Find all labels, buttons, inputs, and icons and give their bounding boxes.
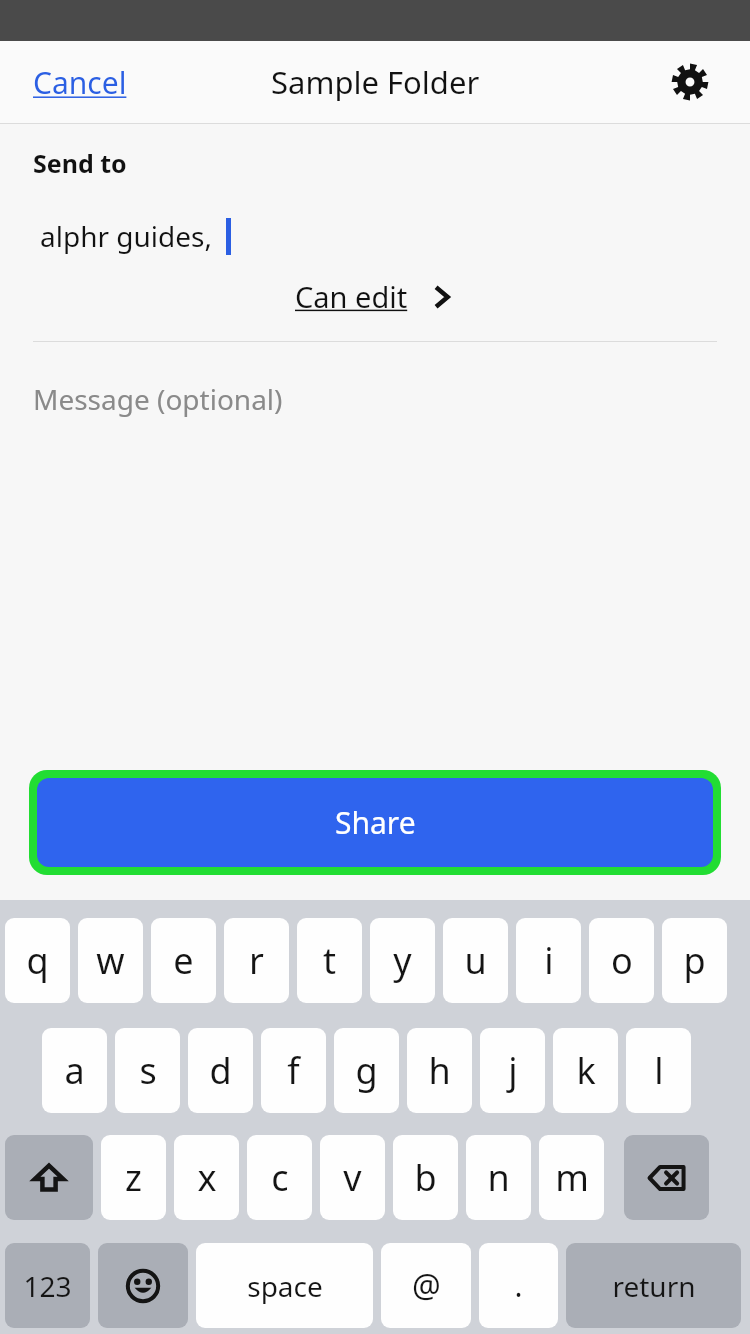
staticText: return	[612, 1267, 696, 1305]
button[interactable]: y	[370, 918, 435, 1003]
button[interactable]: k	[553, 1028, 618, 1113]
staticText: i	[544, 936, 554, 985]
staticText: a	[64, 1046, 85, 1095]
button[interactable]: s	[115, 1028, 180, 1113]
button[interactable]: n	[466, 1135, 531, 1220]
staticText: q	[26, 936, 49, 985]
staticText: c	[271, 1153, 289, 1202]
staticText: z	[125, 1153, 142, 1202]
button[interactable]: i	[516, 918, 581, 1003]
button[interactable]: m	[539, 1135, 604, 1220]
staticText: Sample Folder	[271, 61, 480, 103]
button[interactable]: d	[188, 1028, 253, 1113]
button[interactable]: h	[407, 1028, 472, 1113]
button[interactable]: space	[196, 1243, 373, 1328]
staticText: Send to	[33, 146, 127, 180]
staticText: 123	[23, 1267, 72, 1305]
staticText: l	[654, 1046, 664, 1095]
button[interactable]: Share	[37, 778, 713, 867]
staticText: Cancel	[33, 62, 127, 103]
staticText: r	[249, 936, 264, 985]
staticText: o	[611, 936, 633, 985]
staticText: d	[209, 1046, 232, 1095]
button[interactable]: Message (optional)	[33, 380, 283, 418]
staticText: .	[514, 1265, 523, 1306]
button[interactable]: a	[42, 1028, 107, 1113]
button[interactable]: g	[334, 1028, 399, 1113]
button[interactable]: u	[443, 918, 508, 1003]
button[interactable]: r	[224, 918, 289, 1003]
button[interactable]: c	[247, 1135, 312, 1220]
button[interactable]: v	[320, 1135, 385, 1220]
staticText: k	[576, 1046, 596, 1095]
staticText: m	[555, 1153, 589, 1202]
button[interactable]: Emoji	[98, 1243, 188, 1328]
staticText: Can edit	[295, 277, 408, 316]
staticText: b	[414, 1153, 437, 1202]
button[interactable]: Settings	[668, 60, 712, 104]
button[interactable]: o	[589, 918, 654, 1003]
staticText: s	[139, 1046, 157, 1095]
staticText: j	[508, 1046, 518, 1095]
staticText: alphr guides,	[40, 217, 212, 255]
staticText: w	[96, 936, 125, 985]
staticText: n	[487, 1153, 510, 1202]
button[interactable]: @	[381, 1243, 471, 1328]
button[interactable]: w	[78, 918, 143, 1003]
button[interactable]: Shift	[5, 1135, 93, 1220]
button[interactable]: return	[566, 1243, 741, 1328]
button[interactable]: t	[297, 918, 362, 1003]
staticText: h	[428, 1046, 451, 1095]
staticText: Share	[335, 802, 416, 843]
button[interactable]: z	[101, 1135, 166, 1220]
staticText: space	[247, 1267, 323, 1305]
button[interactable]: q	[5, 918, 70, 1003]
staticText: y	[393, 936, 412, 985]
button[interactable]: p	[662, 918, 727, 1003]
staticText: t	[323, 936, 336, 985]
button[interactable]: l	[626, 1028, 691, 1113]
button[interactable]: Cancel	[33, 62, 127, 103]
staticText: u	[464, 936, 487, 985]
staticText: e	[173, 936, 194, 985]
staticText: v	[343, 1153, 362, 1202]
button[interactable]: Can edit	[295, 277, 456, 316]
button[interactable]: f	[261, 1028, 326, 1113]
button[interactable]: .	[479, 1243, 558, 1328]
staticText: f	[287, 1046, 300, 1095]
staticText: g	[355, 1046, 378, 1095]
button[interactable]: 123	[5, 1243, 90, 1328]
button[interactable]: x	[174, 1135, 239, 1220]
button[interactable]: j	[480, 1028, 545, 1113]
button[interactable]: Backspace	[624, 1135, 709, 1220]
staticText: @	[412, 1264, 441, 1308]
button[interactable]: e	[151, 918, 216, 1003]
staticText: p	[683, 936, 706, 985]
staticText: x	[197, 1153, 217, 1202]
button[interactable]: b	[393, 1135, 458, 1220]
